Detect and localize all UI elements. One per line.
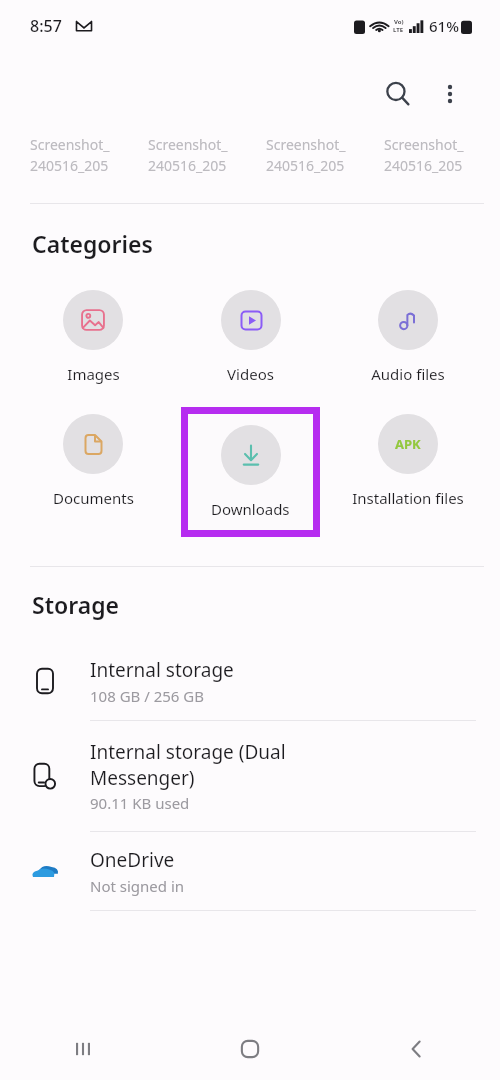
staticText: 8:57 xyxy=(30,15,62,37)
staticText: Categories xyxy=(32,228,153,259)
staticText: Internal storage xyxy=(90,657,234,683)
staticText: Storage xyxy=(32,589,120,620)
staticText: 90.11 KB used xyxy=(90,793,190,813)
button[interactable]: OneDrive xyxy=(0,832,500,911)
staticText: LTE xyxy=(393,26,404,34)
staticText: Internal storage (Dual Messenger) xyxy=(90,739,286,790)
staticText: Installation files xyxy=(352,488,464,508)
staticText: 240516_2056... xyxy=(384,156,466,175)
staticText: Not signed in xyxy=(90,876,185,896)
button[interactable]: Videos xyxy=(172,283,329,391)
staticText: OneDrive xyxy=(90,847,175,873)
button[interactable]: Images xyxy=(14,283,172,391)
staticText: Screenshot_20 xyxy=(384,135,466,154)
staticText: Videos xyxy=(227,364,274,384)
staticText: Screenshot_20 xyxy=(30,135,114,154)
button[interactable]: Search xyxy=(374,70,422,118)
staticText: Downloads xyxy=(211,499,290,519)
staticText: Screenshot_20 xyxy=(148,135,232,154)
button[interactable]: Back xyxy=(333,1018,500,1080)
staticText: Audio files xyxy=(371,364,445,384)
button[interactable]: More options xyxy=(426,70,474,118)
button[interactable]: Internal storage xyxy=(0,642,500,721)
button[interactable]: Audio files xyxy=(329,283,486,391)
button[interactable]: APK xyxy=(329,407,486,515)
staticText: 240516_2056... xyxy=(266,156,350,175)
staticText: 108 GB / 256 GB xyxy=(90,686,205,706)
staticText: Screenshot_20 xyxy=(266,135,350,154)
staticText: APK xyxy=(395,435,421,453)
staticText: 240516_2056... xyxy=(30,156,114,175)
staticText: Vo) xyxy=(394,18,404,26)
staticText: Images xyxy=(67,364,120,384)
button[interactable]: Internal storage (Dual Messenger) xyxy=(0,721,500,832)
button[interactable]: Downloads xyxy=(188,414,313,530)
button[interactable]: Documents xyxy=(14,407,172,515)
staticText: 240516_2056... xyxy=(148,156,232,175)
staticText: 61% xyxy=(429,16,459,36)
button[interactable]: Home xyxy=(166,1018,333,1080)
staticText: Documents xyxy=(53,488,134,508)
button[interactable]: Recents xyxy=(0,1018,166,1080)
